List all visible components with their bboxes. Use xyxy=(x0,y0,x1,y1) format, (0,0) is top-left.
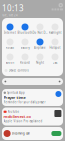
button[interactable]: Settings xyxy=(58,3,63,7)
button[interactable]: Do Not Dist xyxy=(32,21,47,36)
staticText: Apple Vision Pro explained xyxy=(4,119,43,123)
staticText: Cast xyxy=(52,61,57,64)
staticText: Airplane xyxy=(34,46,46,49)
staticText: YouTube xyxy=(8,110,20,113)
button[interactable]: Internet xyxy=(2,21,17,36)
button[interactable]: Screen xyxy=(2,51,17,66)
staticText: Night xyxy=(36,61,44,64)
staticText: Screen xyxy=(5,61,14,64)
button[interactable]: YouTube xyxy=(2,107,63,125)
button[interactable]: Spiritual App xyxy=(2,89,63,106)
button[interactable]: Cast xyxy=(47,51,62,66)
staticText: 10:13 xyxy=(2,3,24,13)
button[interactable]: Night xyxy=(32,51,47,66)
button[interactable]: Battery xyxy=(17,36,32,51)
staticText: Hotspot xyxy=(49,46,60,49)
staticText: Internet xyxy=(4,31,16,34)
staticText: Incoming call xyxy=(12,132,30,135)
staticText: Do Not Dist xyxy=(32,31,47,34)
button[interactable]: Incoming call xyxy=(2,127,63,140)
button[interactable]: Rotate xyxy=(2,36,17,51)
staticText: Battery xyxy=(20,46,29,49)
staticText: Bluetooth xyxy=(17,31,32,34)
staticText: Prayer time xyxy=(4,95,26,100)
staticText: Rotate xyxy=(5,46,14,49)
staticText: Flashlight xyxy=(48,31,61,34)
staticText: mobilenest.co xyxy=(4,114,31,119)
staticText: Device controls xyxy=(8,69,28,72)
staticText: Record xyxy=(20,61,30,64)
staticText: Reminder for your daily prayer xyxy=(4,100,46,104)
button[interactable]: Airplane xyxy=(32,36,47,51)
button[interactable]: Hotspot xyxy=(47,36,62,51)
button[interactable]: Flashlight xyxy=(47,21,62,36)
button[interactable]: Record xyxy=(17,51,32,66)
staticText: Spiritual App xyxy=(7,91,25,94)
button[interactable]: Bluetooth xyxy=(17,21,32,36)
staticText: Tue, Oct 24 xyxy=(2,13,18,17)
